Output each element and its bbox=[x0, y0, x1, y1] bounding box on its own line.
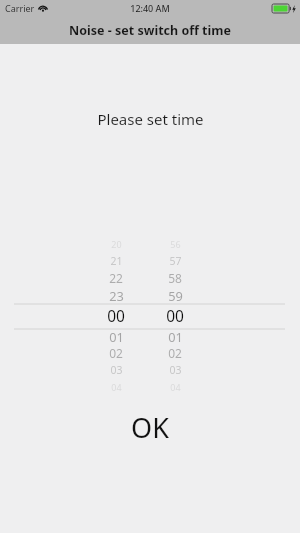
staticText: 56 bbox=[170, 238, 181, 250]
staticText: 04 bbox=[170, 381, 181, 393]
staticText: 01 bbox=[168, 328, 183, 345]
staticText: 00 bbox=[107, 305, 125, 325]
staticText: OK bbox=[131, 409, 169, 446]
staticText: 57 bbox=[169, 254, 182, 268]
staticText: 58 bbox=[168, 270, 182, 286]
staticText: Carrier bbox=[5, 2, 35, 14]
button[interactable]: 20 bbox=[0, 188, 300, 358]
staticText: 03 bbox=[169, 363, 182, 377]
staticText: 03 bbox=[110, 363, 123, 377]
staticText: 59 bbox=[168, 287, 183, 304]
staticText: 02 bbox=[168, 345, 182, 361]
button[interactable]: OK bbox=[95, 404, 205, 450]
staticText: Noise - set switch off time bbox=[69, 22, 231, 39]
staticText: 04 bbox=[111, 381, 122, 393]
staticText: 22 bbox=[109, 270, 123, 286]
staticText: 23 bbox=[109, 287, 124, 304]
staticText: 12:40 AM bbox=[130, 2, 170, 14]
staticText: 21 bbox=[110, 254, 123, 268]
staticText: Please set time bbox=[97, 109, 204, 129]
staticText: 20 bbox=[111, 238, 122, 250]
staticText: 01 bbox=[109, 328, 124, 345]
staticText: 02 bbox=[109, 345, 123, 361]
staticText: 00 bbox=[166, 305, 184, 325]
